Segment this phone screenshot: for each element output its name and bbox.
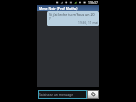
staticText: Si j'ai leche tu m'fous un 20 ? (49, 12, 95, 21)
button[interactable]: Si j'ai leche tu m'fous un 20 ? (47, 11, 99, 26)
staticText: 19h37 (88, 0, 98, 5)
staticText: 19:36, 11 mai (49, 21, 98, 25)
button[interactable]: Saisissez un message (38, 90, 87, 99)
button[interactable]: Mme Noir (Prof Maths) (37, 5, 99, 11)
staticText: Mme Noir (Prof Maths) (39, 6, 78, 11)
button[interactable]: Attach file (87, 90, 99, 99)
staticText: Saisissez un message (39, 92, 74, 97)
